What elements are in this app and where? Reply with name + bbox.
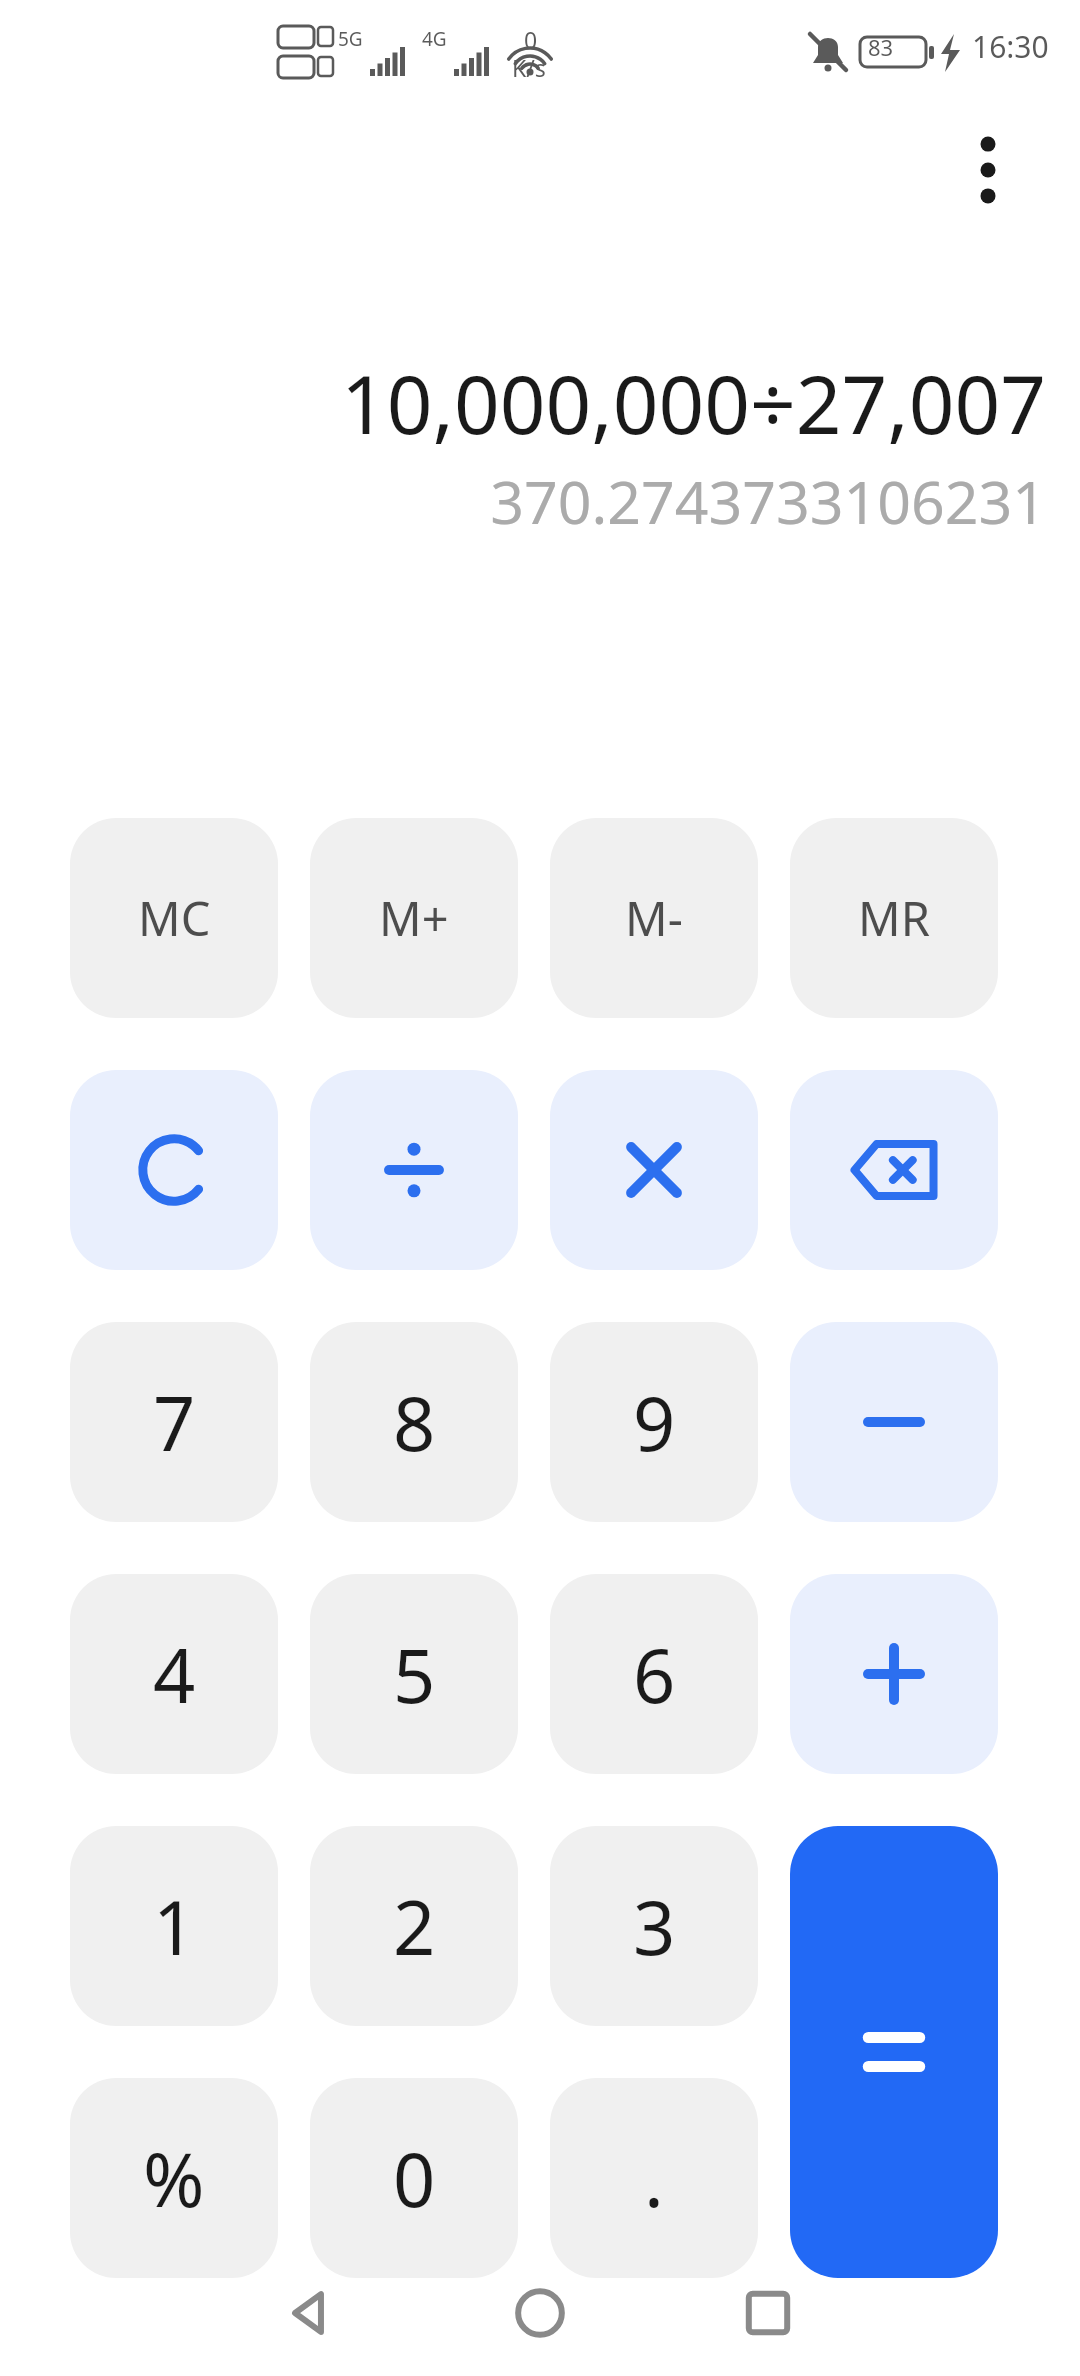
button[interactable]: 0 — [310, 2078, 518, 2278]
staticText: 83 — [868, 32, 894, 62]
staticText: M- — [625, 886, 683, 950]
button[interactable]: 5 — [310, 1574, 518, 1774]
button[interactable]: Backspace — [790, 1070, 998, 1270]
button[interactable]: % — [70, 2078, 278, 2278]
button[interactable]: M+ — [310, 818, 518, 1018]
button[interactable]: 2 — [310, 1826, 518, 2026]
button[interactable]: MC — [70, 818, 278, 1018]
staticText: MC — [138, 886, 211, 950]
staticText: 3 — [633, 1876, 676, 1977]
button[interactable]: Equals — [790, 1826, 998, 2278]
staticText: 6 — [633, 1624, 676, 1725]
staticText: 8 — [393, 1372, 436, 1473]
button[interactable]: 3 — [550, 1826, 758, 2026]
staticText: 4G — [422, 26, 447, 52]
staticText: 4 — [153, 1624, 196, 1725]
staticText: 16:30 — [972, 26, 1049, 67]
staticText: 5 — [393, 1624, 436, 1725]
button[interactable]: 6 — [550, 1574, 758, 1774]
staticText: 5G — [338, 26, 363, 52]
button[interactable]: . — [550, 2078, 758, 2278]
button[interactable]: Minus — [790, 1322, 998, 1522]
button[interactable]: More options — [936, 118, 1040, 222]
button[interactable]: Back — [238, 2250, 378, 2376]
staticText: 10,000,000÷27,007 — [341, 348, 1046, 457]
staticText: M+ — [379, 886, 449, 950]
staticText: 9 — [633, 1372, 676, 1473]
button[interactable]: 1 — [70, 1826, 278, 2026]
staticText: K/s — [512, 52, 546, 83]
button[interactable]: Home — [470, 2250, 610, 2376]
staticText: 0 — [393, 2128, 436, 2229]
staticText: 370.2743733106231 — [490, 461, 1046, 541]
staticText: 1 — [153, 1876, 196, 1977]
staticText: 7 — [153, 1372, 196, 1473]
button[interactable]: 7 — [70, 1322, 278, 1522]
staticText: 0 — [524, 24, 538, 55]
staticText: % — [143, 2128, 205, 2229]
staticText: 2 — [393, 1876, 436, 1977]
button[interactable]: Plus — [790, 1574, 998, 1774]
button[interactable]: 4 — [70, 1574, 278, 1774]
button[interactable]: Divide — [310, 1070, 518, 1270]
button[interactable]: M- — [550, 818, 758, 1018]
button[interactable]: Recent apps — [698, 2250, 838, 2376]
staticText: . — [644, 2128, 664, 2229]
button[interactable]: 8 — [310, 1322, 518, 1522]
button[interactable]: Multiply — [550, 1070, 758, 1270]
button[interactable]: 9 — [550, 1322, 758, 1522]
button[interactable]: Clear — [70, 1070, 278, 1270]
staticText: MR — [858, 886, 930, 950]
button[interactable]: MR — [790, 818, 998, 1018]
